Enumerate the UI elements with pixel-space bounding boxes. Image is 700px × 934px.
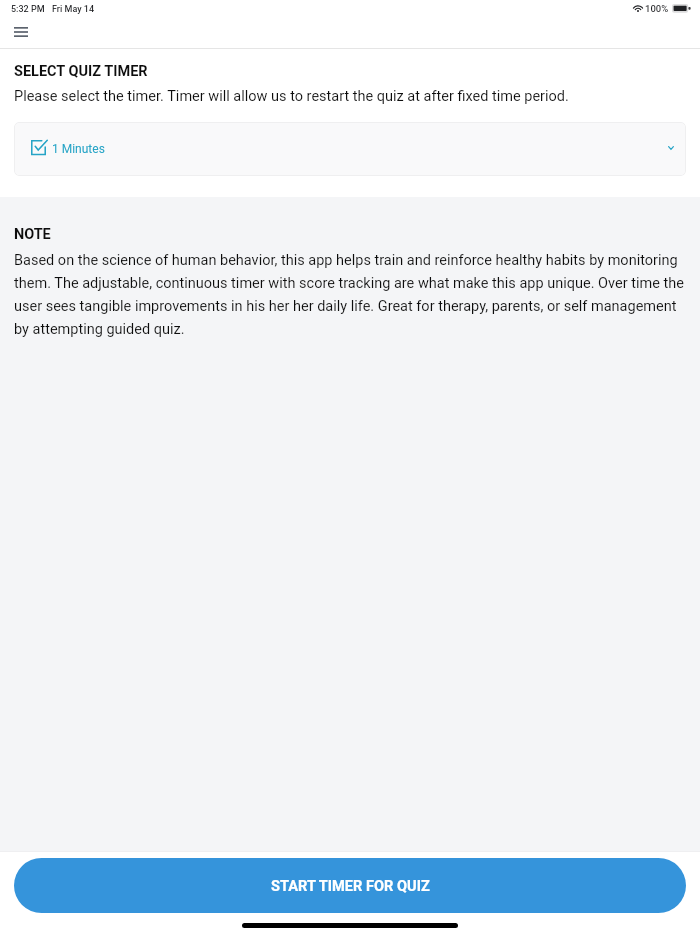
staticText: SELECT QUIZ TIMER: [14, 63, 148, 80]
staticText: Fri May 14: [52, 4, 95, 15]
button[interactable]: Open navigation menu: [2, 20, 40, 44]
button[interactable]: 1 Minutes: [14, 122, 686, 176]
button[interactable]: START TIMER FOR QUIZ: [14, 858, 686, 913]
staticText: NOTE: [14, 226, 51, 243]
staticText: 100%: [645, 3, 669, 14]
staticText: 1 Minutes: [52, 142, 105, 156]
staticText: 5:32 PM: [11, 4, 45, 15]
staticText: Please select the timer. Timer will allo…: [14, 88, 569, 105]
staticText: Based on the science of human behavior, …: [14, 252, 686, 338]
staticText: START TIMER FOR QUIZ: [271, 877, 430, 894]
